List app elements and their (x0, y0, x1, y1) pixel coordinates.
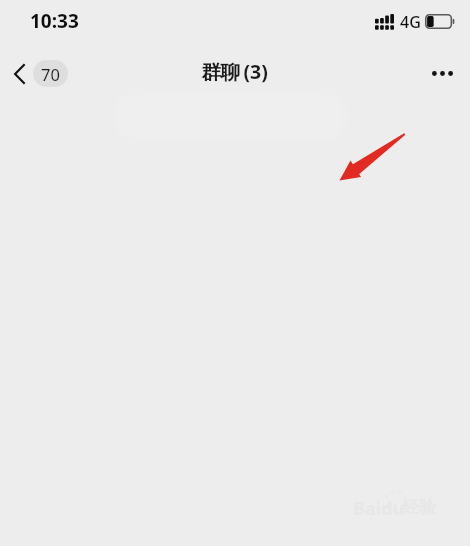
staticText: 4G (400, 11, 421, 33)
staticText: 群聊 (3) (201, 58, 268, 85)
staticText: 70 (41, 63, 60, 85)
staticText: 10:33 (30, 8, 79, 34)
button[interactable]: More options (416, 57, 470, 90)
button[interactable]: Back (9, 54, 74, 93)
